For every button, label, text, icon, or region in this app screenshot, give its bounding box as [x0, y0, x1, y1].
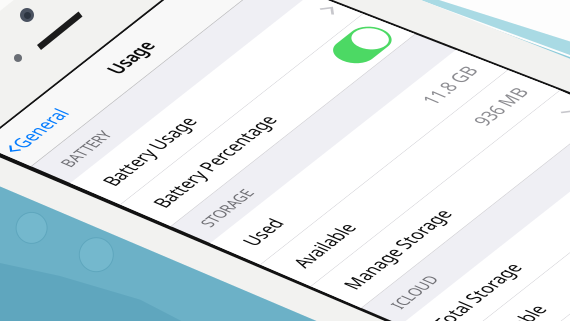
button[interactable]: Battery Percentage: [0, 142, 320, 186]
staticText: STORAGE: [16, 195, 73, 213]
staticText: Battery Usage: [16, 109, 123, 130]
button[interactable]: Used: [0, 220, 320, 264]
staticText: 936 MB: [248, 275, 304, 296]
staticText: 11.8 GB: [247, 231, 304, 252]
staticText: Available: [16, 275, 83, 296]
staticText: Used: [16, 231, 55, 252]
staticText: General: [15, 31, 74, 52]
button[interactable]: General: [0, 31, 74, 52]
staticText: BATTERY: [16, 73, 71, 91]
button[interactable]: Battery Usage: [0, 98, 320, 142]
staticText: Battery Percentage: [16, 153, 161, 174]
button[interactable]: Manage Storage: [0, 308, 320, 321]
staticText: Usage: [136, 31, 184, 52]
button[interactable]: Available: [0, 264, 320, 308]
